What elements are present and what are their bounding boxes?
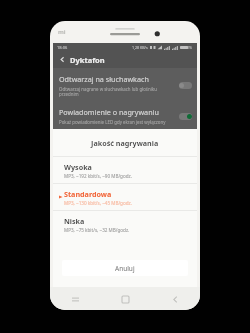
staticText: 1,28 KB/s bbox=[132, 45, 148, 50]
button[interactable]: Wysoka bbox=[53, 157, 197, 183]
staticText: Odtwarzaj na słuchawkach bbox=[59, 74, 149, 84]
staticText: Wysoka bbox=[64, 162, 92, 172]
button[interactable]: Niska bbox=[53, 211, 197, 237]
staticText: Pokaż powiadomienie LED gdy ekran jest w… bbox=[59, 119, 166, 125]
button[interactable]: Home bbox=[116, 290, 134, 308]
staticText: Pokazuj pytanie o zmianę nazwy bbox=[59, 159, 168, 169]
staticText: MP3, ~192 kbit/s, ~90 MB/godz. bbox=[64, 173, 132, 179]
staticText: Odtwarzaj nagrane w słuchawkach lub głoś… bbox=[59, 86, 176, 98]
staticText: 18:06 bbox=[57, 45, 68, 50]
staticText: Jakość nagrywania bbox=[91, 138, 159, 148]
button[interactable]: Recents bbox=[66, 290, 84, 308]
button[interactable]: Ciche nagrywanie bbox=[53, 131, 197, 153]
staticText: 92% bbox=[185, 45, 193, 50]
button[interactable]: Odtwarzaj na słuchawkach bbox=[53, 70, 197, 101]
staticText: Dyktafon bbox=[70, 55, 105, 65]
button[interactable]: Anuluj bbox=[62, 260, 188, 276]
button[interactable]: Standardowa bbox=[53, 184, 197, 210]
button[interactable]: Back bbox=[166, 290, 184, 308]
staticText: Ciche nagrywanie bbox=[59, 137, 119, 147]
staticText: Anuluj bbox=[115, 264, 135, 273]
button[interactable]: Back bbox=[57, 54, 68, 65]
staticText: MP3, ~75 kbit/s, ~32 MB/godz. bbox=[64, 227, 130, 233]
button[interactable]: Powiadomienie o nagrywaniu bbox=[53, 101, 197, 131]
staticText: MP3, ~130 kbit/s, ~45 MB/godz. bbox=[64, 200, 132, 206]
button[interactable]: Powiadomienie o nagrywaniu bbox=[179, 113, 192, 120]
staticText: mi bbox=[58, 28, 66, 36]
staticText: Powiadomienie o nagrywaniu bbox=[59, 107, 159, 117]
button[interactable]: Pokazuj pytanie o zmianę nazwy bbox=[53, 153, 197, 175]
button[interactable]: Odtwarzaj na słuchawkach bbox=[179, 82, 192, 89]
staticText: Standardowa bbox=[64, 189, 112, 199]
staticText: Niska bbox=[64, 216, 85, 226]
